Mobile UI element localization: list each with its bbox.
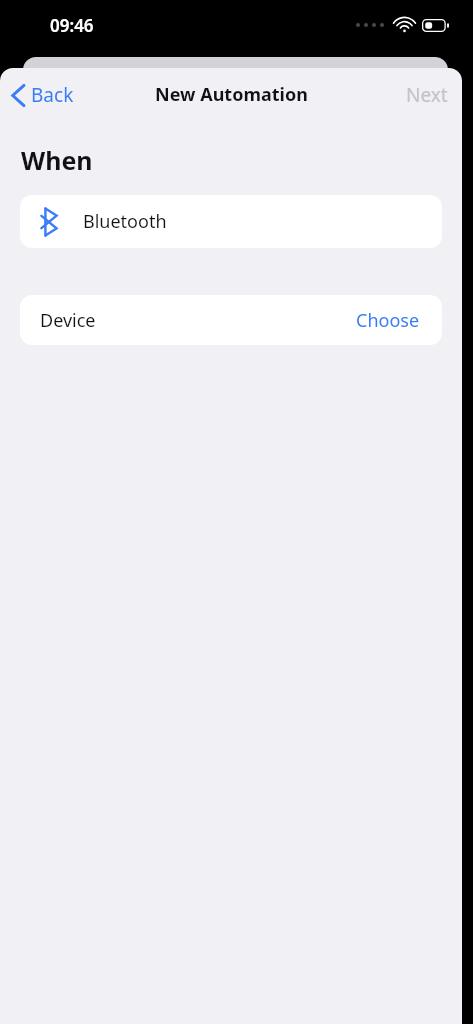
staticText: Bluetooth	[83, 209, 167, 234]
staticText: 09:46	[50, 14, 94, 37]
staticText: New Automation	[155, 82, 308, 107]
staticText: Choose	[356, 308, 420, 333]
button[interactable]: Bluetooth	[20, 195, 442, 248]
staticText: Next	[406, 82, 448, 108]
button[interactable]: Device	[20, 295, 442, 345]
staticText: When	[21, 143, 93, 177]
button[interactable]: Next	[392, 74, 462, 116]
other: Wi-Fi	[395, 18, 414, 32]
other: Back	[12, 84, 25, 107]
other: Battery	[422, 19, 449, 32]
staticText: Back	[31, 82, 74, 108]
staticText: Device	[40, 308, 96, 333]
other: Bluetooth	[40, 208, 58, 236]
button[interactable]: Back	[0, 76, 86, 114]
